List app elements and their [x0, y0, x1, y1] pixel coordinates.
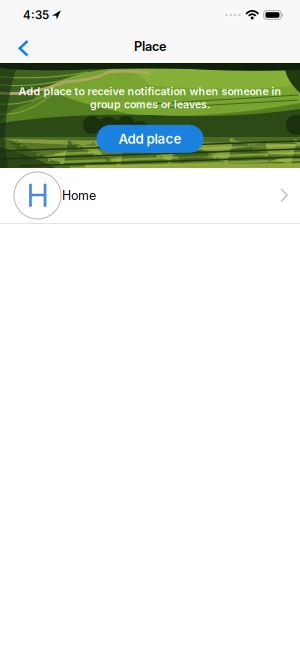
- button[interactable]: Add place: [96, 125, 203, 153]
- staticText: Add place: [118, 131, 181, 147]
- staticText: Home: [62, 188, 96, 203]
- staticText: Add place to receive notification when s…: [18, 85, 281, 98]
- staticText: 4:35: [23, 8, 49, 22]
- staticText: group comes or leaves.: [90, 98, 210, 111]
- staticText: Place: [134, 39, 166, 54]
- button[interactable]: Back: [0, 30, 29, 63]
- button[interactable]: H: [0, 168, 300, 223]
- staticText: H: [26, 177, 48, 214]
